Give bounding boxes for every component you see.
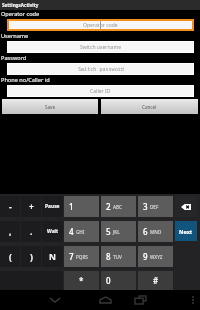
staticText: 7	[69, 251, 74, 262]
staticText: (	[9, 251, 12, 263]
button[interactable]: #	[138, 271, 173, 290]
staticText: Pause	[45, 203, 60, 210]
staticText: 9	[143, 251, 148, 262]
button[interactable]: 9	[138, 246, 173, 267]
staticText: #	[153, 275, 159, 286]
staticText: PQRS	[76, 254, 88, 260]
button[interactable]: *	[64, 271, 99, 290]
button[interactable]: Wait	[42, 221, 63, 242]
button[interactable]: -	[0, 196, 20, 217]
staticText: 6	[143, 226, 148, 237]
staticText: 1	[69, 201, 74, 212]
staticText: Caller ID	[90, 88, 111, 95]
button[interactable]: ,	[0, 221, 20, 242]
staticText: Operator code	[83, 22, 118, 29]
staticText: Wait	[47, 228, 59, 235]
staticText: Cancel	[142, 104, 157, 110]
button[interactable]: Home	[95, 290, 115, 310]
button[interactable]: .	[21, 221, 41, 242]
button[interactable]: Recent apps	[130, 290, 150, 310]
button[interactable]: Cancel	[101, 99, 198, 114]
staticText: GHI	[76, 229, 85, 235]
staticText: 0	[106, 275, 111, 286]
staticText: 5	[106, 226, 111, 237]
staticText: N	[49, 251, 56, 263]
staticText: DEF	[150, 204, 159, 210]
button[interactable]: 3	[138, 196, 173, 217]
staticText: Switch username	[80, 44, 122, 51]
button[interactable]: N	[42, 246, 63, 267]
button[interactable]: Pause	[42, 196, 63, 217]
button[interactable]: 4	[64, 221, 99, 242]
staticText: -	[9, 201, 12, 213]
button[interactable]: Caller ID	[8, 86, 193, 96]
staticText: 4	[69, 226, 74, 237]
staticText: ABC	[113, 204, 122, 210]
button[interactable]: More options	[186, 293, 200, 307]
button[interactable]: 8	[101, 246, 136, 267]
staticText: *	[79, 275, 84, 286]
staticText: 2	[106, 201, 111, 212]
staticText: Save	[45, 104, 56, 110]
button[interactable]: )	[21, 246, 41, 267]
button[interactable]: Back	[45, 290, 65, 310]
staticText: Switch password	[78, 66, 124, 73]
staticText: +	[29, 201, 34, 213]
staticText: 3	[143, 201, 148, 212]
staticText: TUV	[113, 254, 122, 260]
staticText: )	[30, 251, 33, 263]
staticText: Username	[1, 32, 29, 40]
staticText: Operator code	[1, 10, 40, 18]
staticText: ,	[9, 226, 12, 238]
staticText: WXYZ	[150, 254, 163, 260]
button[interactable]: Switch username	[8, 42, 193, 52]
button[interactable]: Next	[175, 221, 197, 241]
staticText: 8	[106, 251, 111, 262]
staticText: .	[30, 226, 33, 238]
button[interactable]: 5	[101, 221, 136, 242]
button[interactable]: 0	[101, 271, 136, 290]
staticText: Next	[179, 228, 193, 235]
button[interactable]: +	[21, 196, 41, 217]
staticText: MNO	[150, 229, 162, 235]
button[interactable]: Operator code	[9, 21, 192, 29]
button[interactable]: 7	[64, 246, 99, 267]
button[interactable]: 1	[64, 196, 99, 217]
button[interactable]: (	[0, 246, 20, 267]
staticText: Phone no/Caller id	[1, 76, 50, 84]
button[interactable]: Switch password	[8, 64, 193, 74]
button[interactable]: Delete	[175, 196, 197, 217]
staticText: JKL	[113, 229, 120, 235]
button[interactable]: 6	[138, 221, 173, 242]
button[interactable]: Save	[2, 99, 98, 114]
button[interactable]: 2	[101, 196, 136, 217]
staticText: Password	[1, 54, 27, 62]
staticText: SettingsActivity	[2, 2, 39, 8]
